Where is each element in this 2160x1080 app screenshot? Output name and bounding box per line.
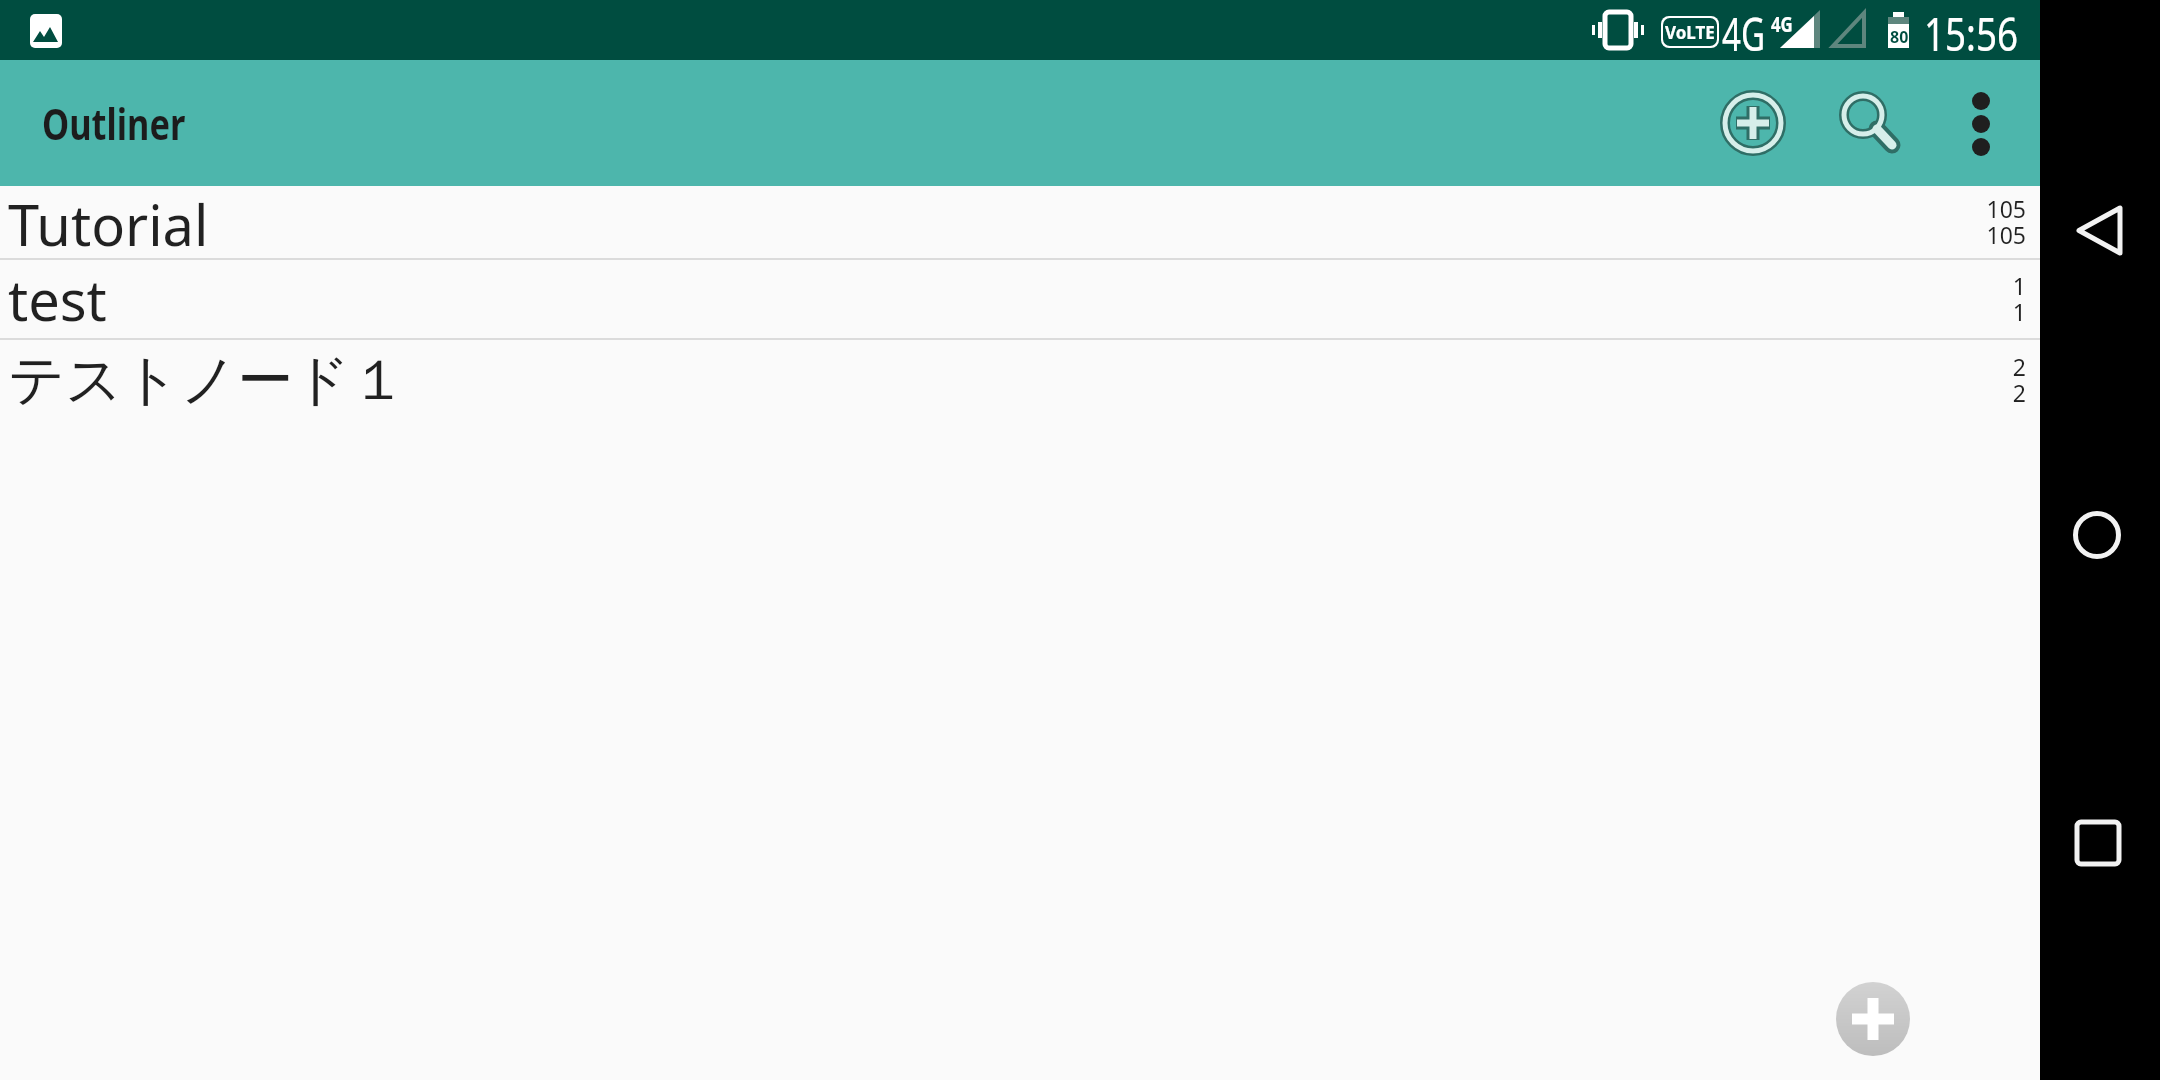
staticText: 15:56: [1924, 2, 2018, 60]
staticText: 1 1: [2012, 270, 2026, 328]
button[interactable]: [1812, 67, 1924, 179]
button[interactable]: [2060, 495, 2140, 575]
staticText: VoLTE: [1665, 21, 1715, 44]
staticText: 4G: [1771, 10, 1793, 39]
button[interactable]: test: [0, 260, 2040, 338]
button[interactable]: Tutorial: [0, 186, 2040, 258]
staticText: Outliner: [42, 94, 186, 153]
button[interactable]: [1836, 982, 1910, 1056]
staticText: Tutorial: [8, 186, 209, 258]
button[interactable]: [2060, 190, 2140, 270]
staticText: 4G: [1722, 2, 1765, 60]
staticText: test: [8, 261, 107, 337]
button[interactable]: テストノード１: [0, 340, 2040, 420]
button[interactable]: [2060, 803, 2140, 883]
staticText: 105 105: [1986, 193, 2026, 251]
button[interactable]: [1941, 67, 2021, 179]
button[interactable]: [1697, 67, 1809, 179]
staticText: 2 2: [2012, 351, 2026, 409]
staticText: 80: [1890, 26, 1909, 48]
staticText: テストノード１: [8, 345, 407, 416]
